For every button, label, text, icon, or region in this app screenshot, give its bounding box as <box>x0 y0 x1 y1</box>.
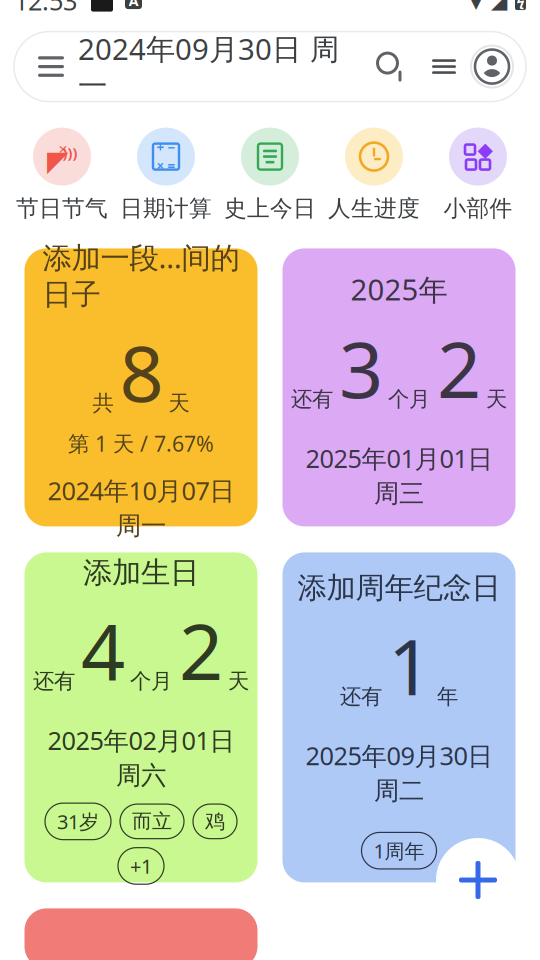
button[interactable]: 史上今日 <box>218 128 322 222</box>
staticText: 天 <box>228 668 249 694</box>
button[interactable]: 添加一段…间的日子 <box>24 248 257 526</box>
staticText: 还有 <box>33 668 75 694</box>
staticText: A <box>128 0 138 10</box>
staticText: 鸡 <box>205 809 225 834</box>
staticText: 31岁 <box>57 808 99 835</box>
staticText: × = <box>156 157 175 175</box>
staticText: 周三 <box>374 478 424 509</box>
staticText: 而立 <box>132 809 172 834</box>
staticText: 2 <box>179 599 223 701</box>
staticText: 还有 <box>340 683 382 710</box>
staticText: ◆ <box>477 138 492 161</box>
button[interactable]: 添加周年纪念日 <box>282 552 515 882</box>
button[interactable]: 我的 <box>472 47 512 87</box>
staticText: 2025年02月01日 <box>47 723 234 757</box>
staticText: 个月 <box>130 668 172 694</box>
staticText: 1周年 <box>373 837 424 864</box>
staticText: 个月 <box>388 386 430 412</box>
button[interactable]: 搜索 <box>368 44 414 90</box>
staticText: + − <box>156 138 175 156</box>
staticText: 节日节气 <box>16 195 108 222</box>
staticText: ◢ <box>491 0 507 13</box>
staticText: 2025年 <box>350 270 447 309</box>
staticText: 添加一段…间的日子 <box>42 237 239 312</box>
staticText: 添加生日 <box>83 555 199 591</box>
staticText: 添加周年纪念日 <box>297 570 500 606</box>
staticText: 小部件 <box>443 195 512 222</box>
button[interactable]: + − <box>114 128 218 222</box>
staticText: 3 <box>339 317 383 419</box>
staticText: ✕ <box>58 143 68 156</box>
staticText: ))) <box>62 143 77 162</box>
staticText: ϟ <box>516 0 524 10</box>
staticText: ◤ <box>47 145 69 177</box>
staticText: 天 <box>168 390 189 416</box>
staticText: 2024年10月07日 <box>47 473 234 507</box>
button[interactable]: ◆ <box>426 128 530 222</box>
staticText: ▾ <box>469 0 483 16</box>
button[interactable]: 添加生日 <box>24 552 257 882</box>
staticText: 史上今日 <box>224 195 316 222</box>
staticText: 天 <box>486 386 507 412</box>
staticText: 1 <box>388 614 432 717</box>
staticText: 2025年09月30日 <box>305 739 492 772</box>
button[interactable]: ◤ <box>10 128 114 222</box>
staticText: 12:53 <box>14 0 77 17</box>
staticText: 2025年01月01日 <box>305 441 492 475</box>
staticText: 2 <box>437 317 481 419</box>
staticText: 8 <box>119 320 163 423</box>
staticText: 年 <box>437 683 458 710</box>
staticText: 还有 <box>291 386 333 412</box>
staticText: 人生进度 <box>328 195 420 222</box>
button[interactable]: 菜单 <box>28 44 74 90</box>
button[interactable]: 人生进度 <box>322 128 426 222</box>
button[interactable]: 2025年 <box>282 248 515 526</box>
staticText: 日期计算 <box>120 195 212 222</box>
staticText: 2024年09月30日 周一 <box>78 29 339 104</box>
staticText: 共 <box>92 390 113 416</box>
staticText: 周二 <box>374 775 424 806</box>
staticText: 4 <box>81 599 125 701</box>
staticText: 第 1 天 / 7.67% <box>68 429 214 457</box>
button[interactable]: 视图切换 <box>424 44 464 90</box>
staticText: 周一 <box>116 510 166 541</box>
button[interactable]: 添加 <box>436 838 520 922</box>
staticText: +1 <box>130 853 152 879</box>
staticText: 周六 <box>116 760 166 791</box>
